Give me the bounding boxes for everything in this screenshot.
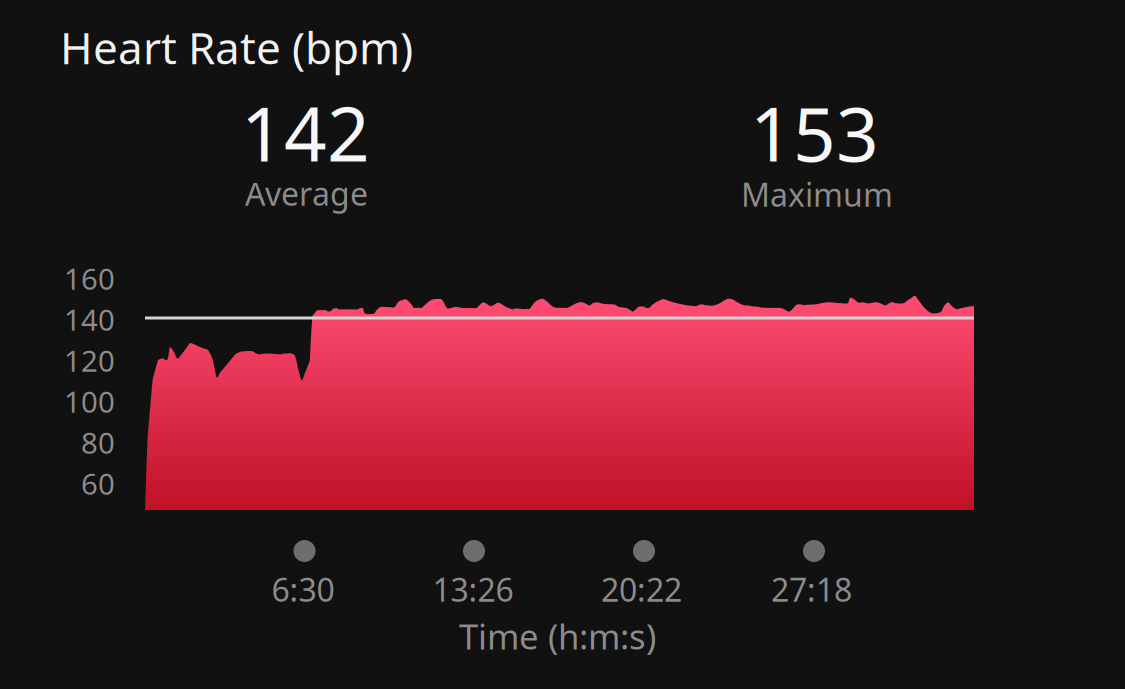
staticText: Time (h:m:s) [459,613,656,659]
staticText: 20:22 [601,568,682,610]
staticText: Average [245,172,368,214]
staticText: 140 [64,300,115,339]
staticText: 27:18 [771,568,852,610]
staticText: 6:30 [271,568,334,610]
staticText: Heart Rate (bpm) [60,18,413,76]
staticText: 160 [64,259,115,298]
button[interactable]: Heart Rate chart, average 142, maximum 1… [0,0,1125,689]
staticText: 100 [64,382,115,421]
staticText: 13:26 [432,568,513,610]
staticText: 60 [81,464,115,503]
staticText: 142 [241,83,370,182]
staticText: 153 [750,83,879,182]
staticText: 80 [81,423,115,462]
staticText: Maximum [741,173,893,215]
staticText: 120 [64,341,115,380]
